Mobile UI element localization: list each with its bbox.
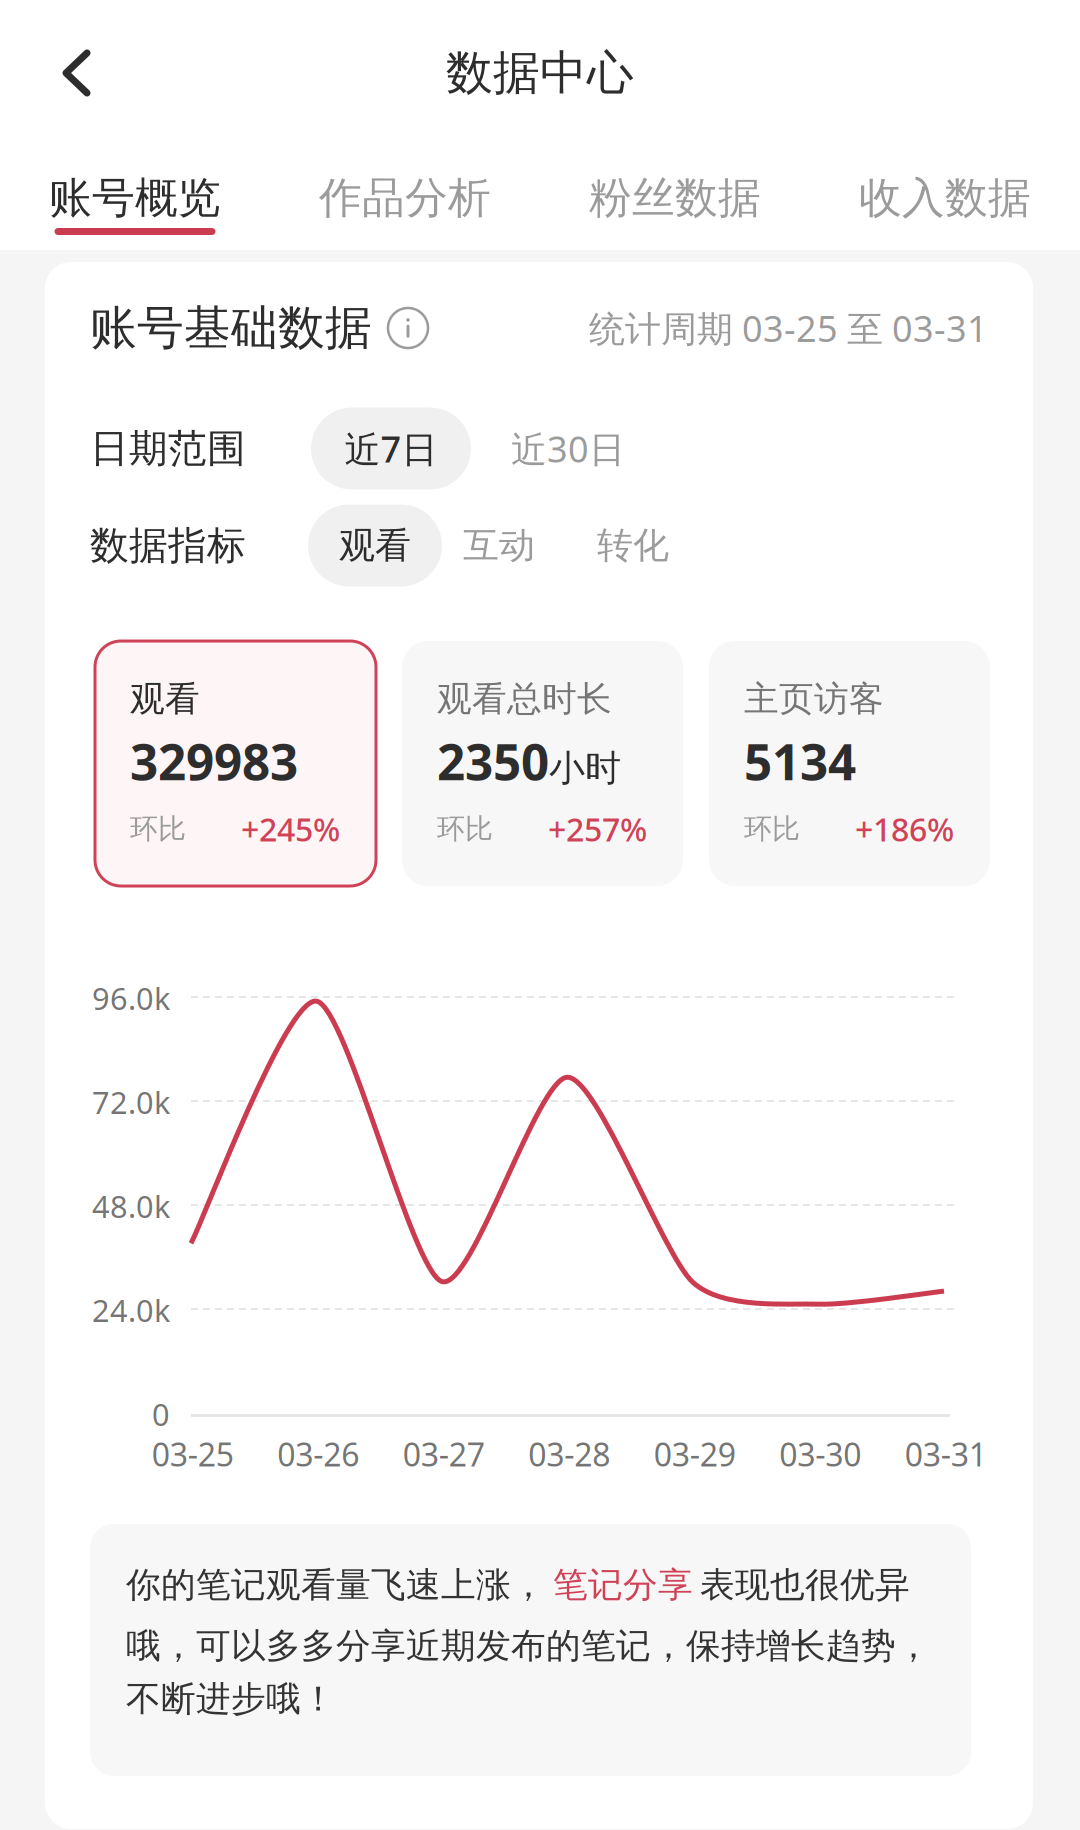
staticText: +186% (855, 808, 954, 850)
staticText: 环比 (130, 812, 186, 846)
staticText: 数据指标 (90, 522, 246, 569)
staticText: 转化 (597, 523, 669, 568)
staticText: 笔记分享 (553, 1564, 693, 1606)
staticText: 329983 (130, 728, 298, 794)
button[interactable]: 互动 (448, 504, 550, 586)
button[interactable]: 账号概览 (0, 175, 270, 235)
staticText: 日期范围 (90, 425, 246, 472)
staticText: 统计周期 03-25 至 03-31 (589, 304, 988, 352)
button[interactable]: 近7日 (311, 407, 471, 489)
button[interactable]: 收入数据 (810, 175, 1080, 235)
staticText: +245% (241, 808, 340, 850)
staticText: 近7日 (344, 425, 437, 472)
staticText: 03-29 (654, 1433, 736, 1475)
button[interactable]: 作品分析 (270, 175, 540, 235)
staticText: 账号概览 (49, 172, 221, 224)
staticText: 小时 (549, 746, 621, 790)
staticText: 环比 (744, 812, 800, 846)
staticText: 观看 (130, 678, 200, 720)
staticText: 0 (152, 1394, 170, 1434)
staticText: 观看 (339, 523, 411, 568)
button[interactable]: 粉丝数据 (540, 175, 810, 235)
button[interactable]: 近30日 (502, 407, 634, 489)
staticText: 03-31 (905, 1433, 987, 1475)
staticText: 24.0k (92, 1290, 170, 1330)
staticText: 账号基础数据 (90, 299, 372, 357)
staticText: 不断进步哦！ (126, 1678, 336, 1720)
staticText: 你的笔记观看量飞速上涨， (126, 1564, 546, 1606)
button[interactable]: Info (386, 306, 430, 350)
button[interactable]: 观看 (308, 504, 442, 586)
staticText: 5134 (744, 728, 856, 794)
staticText: 03-26 (277, 1433, 359, 1475)
staticText: 收入数据 (859, 172, 1031, 224)
staticText: +257% (548, 808, 647, 850)
staticText: 哦，可以多多分享近期发布的笔记，保持增长趋势， (126, 1625, 931, 1667)
staticText: 03-30 (779, 1433, 861, 1475)
staticText: 近30日 (511, 425, 625, 472)
staticText: 48.0k (92, 1186, 170, 1226)
staticText: 03-25 (152, 1433, 234, 1475)
staticText: 观看总时长 (437, 678, 612, 720)
staticText: 96.0k (92, 978, 170, 1018)
staticText: 粉丝数据 (589, 172, 761, 224)
staticText: 数据中心 (446, 44, 634, 102)
staticText: 72.0k (92, 1082, 170, 1122)
staticText: 作品分析 (319, 172, 491, 224)
staticText: 主页访客 (744, 678, 884, 720)
staticText: 2350 (437, 728, 549, 794)
staticText: 03-27 (403, 1433, 485, 1475)
staticText: 互动 (463, 523, 535, 568)
staticText: 表现也很优异 (700, 1564, 910, 1606)
button[interactable]: 观看总时长 (402, 641, 683, 886)
button[interactable]: Back (0, 11, 153, 135)
button[interactable]: 主页访客 (709, 641, 990, 886)
staticText: 环比 (437, 812, 493, 846)
staticText: 03-28 (528, 1433, 610, 1475)
button[interactable]: 转化 (582, 504, 684, 586)
button[interactable]: 观看 (95, 641, 376, 886)
